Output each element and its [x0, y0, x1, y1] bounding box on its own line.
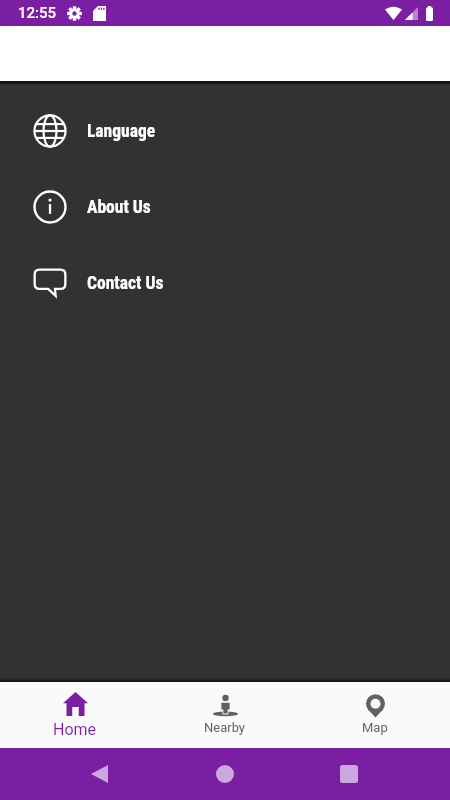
button[interactable]: Home [150, 748, 300, 800]
button[interactable]: About Us [0, 169, 450, 245]
staticText: 12:55 [18, 4, 57, 22]
button[interactable]: Contact Us [0, 245, 450, 321]
button[interactable]: Nearby [150, 682, 300, 748]
button[interactable]: Recent apps [300, 748, 397, 800]
staticText: About Us [87, 197, 151, 218]
button[interactable]: Language [0, 93, 450, 169]
staticText: Home [53, 720, 97, 739]
button[interactable]: Map [300, 682, 450, 748]
button[interactable]: Back [48, 748, 150, 800]
staticText: Map [362, 720, 388, 735]
staticText: Nearby [204, 720, 246, 735]
button[interactable]: Home [0, 682, 150, 748]
staticText: Language [87, 121, 156, 142]
staticText: Contact Us [87, 273, 164, 294]
